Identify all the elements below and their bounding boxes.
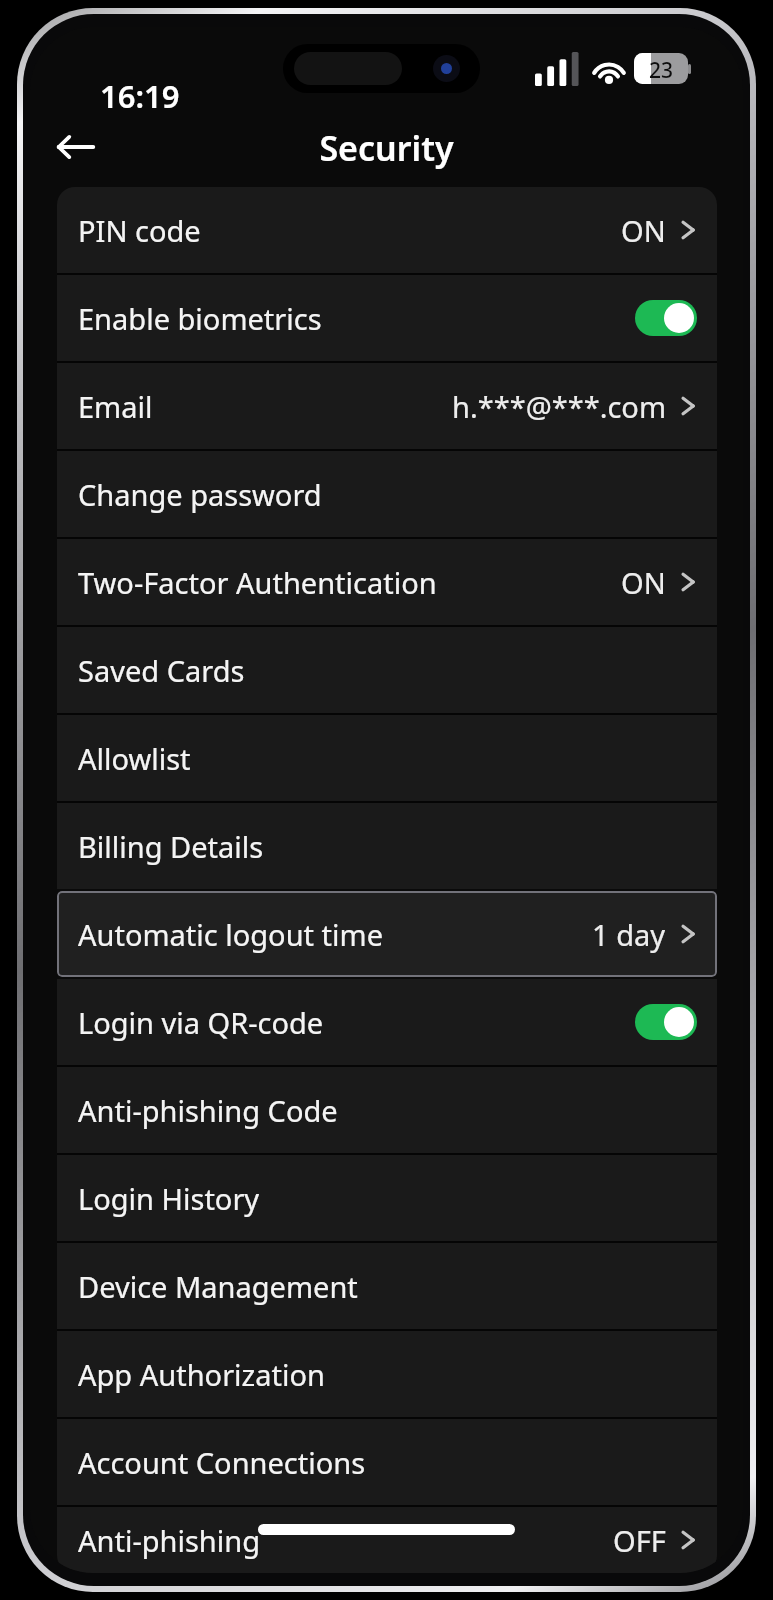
button[interactable]: Change password bbox=[57, 451, 717, 537]
staticText: Change password bbox=[78, 475, 322, 514]
staticText: Login via QR-code bbox=[78, 1003, 324, 1042]
button[interactable]: Email bbox=[57, 363, 717, 449]
staticText: Billing Details bbox=[78, 827, 264, 866]
staticText: Security bbox=[30, 125, 743, 171]
staticText: Automatic logout time bbox=[78, 915, 384, 954]
button[interactable]: Billing Details bbox=[57, 803, 717, 889]
staticText: OFF bbox=[613, 1521, 666, 1560]
staticText: App Authorization bbox=[78, 1355, 325, 1394]
staticText: 23 bbox=[634, 56, 688, 84]
staticText: Anti-phishing bbox=[78, 1521, 261, 1560]
staticText: 16:19 bbox=[100, 75, 180, 117]
button[interactable]: Allowlist bbox=[57, 715, 717, 801]
button[interactable]: Login via QR-code bbox=[57, 979, 717, 1065]
staticText: 1 day bbox=[592, 915, 666, 954]
staticText: Allowlist bbox=[78, 739, 191, 778]
staticText: Device Management bbox=[78, 1267, 358, 1306]
button[interactable]: Enable biometrics toggle bbox=[635, 300, 697, 336]
button[interactable]: Login via QR-code toggle bbox=[635, 1004, 697, 1040]
button[interactable]: App Authorization bbox=[57, 1331, 717, 1417]
staticText: Anti-phishing Code bbox=[78, 1091, 338, 1130]
staticText: ON bbox=[621, 211, 666, 250]
button[interactable]: Anti-phishing bbox=[57, 1507, 717, 1573]
button[interactable]: Two-Factor Authentication bbox=[57, 539, 717, 625]
button[interactable]: Enable biometrics bbox=[57, 275, 717, 361]
staticText: Saved Cards bbox=[78, 651, 245, 690]
staticText: Enable biometrics bbox=[78, 299, 322, 338]
button[interactable]: Back bbox=[52, 123, 100, 171]
button[interactable]: Device Management bbox=[57, 1243, 717, 1329]
staticText: PIN code bbox=[78, 211, 201, 250]
button[interactable]: Anti-phishing Code bbox=[57, 1067, 717, 1153]
button[interactable]: Login History bbox=[57, 1155, 717, 1241]
staticText: Two-Factor Authentication bbox=[78, 563, 437, 602]
staticText: ON bbox=[621, 563, 666, 602]
button[interactable]: Account Connections bbox=[57, 1419, 717, 1505]
button[interactable]: Saved Cards bbox=[57, 627, 717, 713]
staticText: Account Connections bbox=[78, 1443, 366, 1482]
staticText: h.***@***.com bbox=[452, 387, 666, 426]
button[interactable]: PIN code bbox=[57, 187, 717, 273]
staticText: Email bbox=[78, 387, 153, 426]
button[interactable]: Automatic logout time bbox=[57, 891, 717, 977]
staticText: Login History bbox=[78, 1179, 260, 1218]
